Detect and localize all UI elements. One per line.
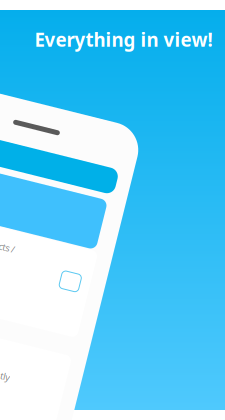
staticText: objects. There are currently xyxy=(0,365,26,377)
staticText: Everything in view! xyxy=(34,27,212,52)
